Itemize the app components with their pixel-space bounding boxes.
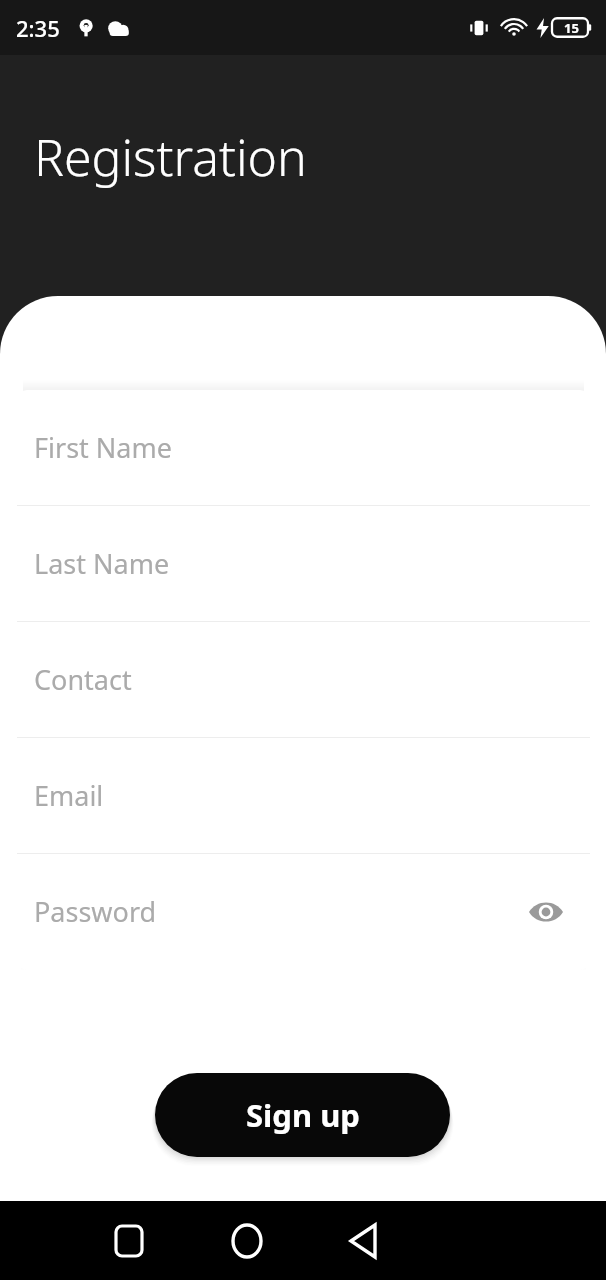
staticText: Password: [34, 893, 514, 930]
staticText: 2:35: [16, 13, 60, 43]
staticText: 15: [564, 19, 579, 37]
staticText: First Name: [34, 429, 590, 466]
button[interactable]: Home: [219, 1213, 275, 1269]
staticText: Contact: [34, 661, 590, 698]
button[interactable]: Password: [17, 854, 590, 969]
button[interactable]: Contact: [17, 622, 590, 737]
button[interactable]: Last Name: [17, 506, 590, 621]
staticText: Email: [34, 777, 590, 814]
button[interactable]: Email: [17, 738, 590, 853]
button[interactable]: Back: [337, 1213, 393, 1269]
button[interactable]: Sign up: [155, 1073, 450, 1157]
button[interactable]: Recents: [101, 1213, 157, 1269]
button[interactable]: First Name: [17, 390, 590, 505]
staticText: Registration: [34, 123, 307, 191]
staticText: Sign up: [246, 1094, 360, 1136]
button[interactable]: Show password: [514, 880, 578, 944]
staticText: Last Name: [34, 545, 590, 582]
